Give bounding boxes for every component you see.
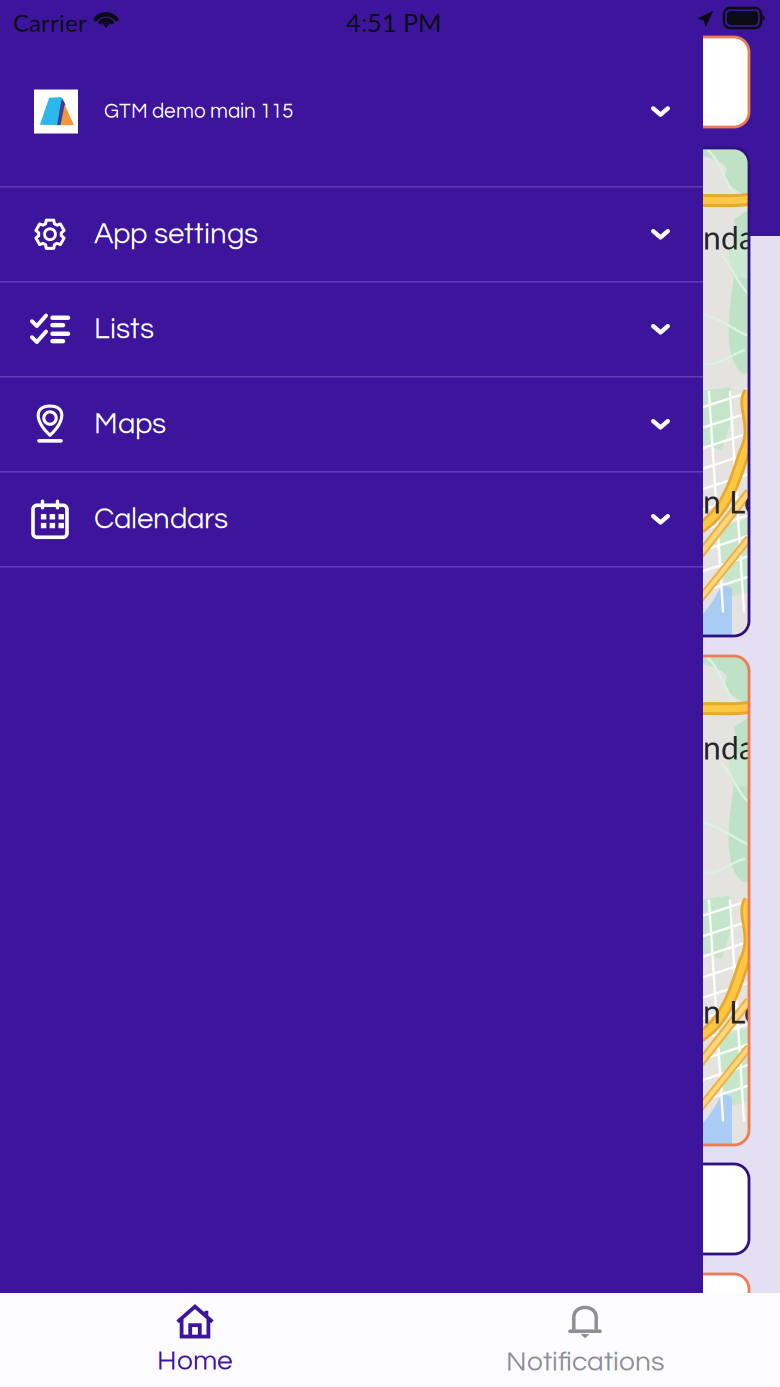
staticText: Lists <box>94 314 154 344</box>
button[interactable]: Calendars <box>0 472 703 567</box>
staticText: nda <box>703 728 755 766</box>
staticText: Calendars <box>94 504 228 534</box>
staticText: nda <box>703 218 755 256</box>
staticText: Maps <box>94 409 166 439</box>
button[interactable]: Lists <box>0 282 703 377</box>
button[interactable]: App settings <box>0 187 703 282</box>
button[interactable]: Notifications <box>390 1304 780 1376</box>
staticText: Carrier <box>13 8 87 37</box>
staticText: Home <box>157 1347 233 1375</box>
staticText: Notifications <box>506 1348 664 1376</box>
staticText: n Lea <box>703 992 777 1030</box>
staticText: 4:51 PM <box>346 7 442 37</box>
staticText: GTM demo main 115 <box>104 101 293 122</box>
staticText: n Lea <box>703 482 777 520</box>
staticText: App settings <box>94 219 258 249</box>
button[interactable]: Home <box>0 1305 390 1375</box>
button[interactable]: Maps <box>0 377 703 472</box>
